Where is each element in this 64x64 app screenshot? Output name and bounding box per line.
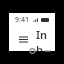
staticText: Inbox xyxy=(36,27,49,51)
staticText: 9:41 xyxy=(15,15,29,25)
button[interactable]: Menu xyxy=(15,31,31,47)
